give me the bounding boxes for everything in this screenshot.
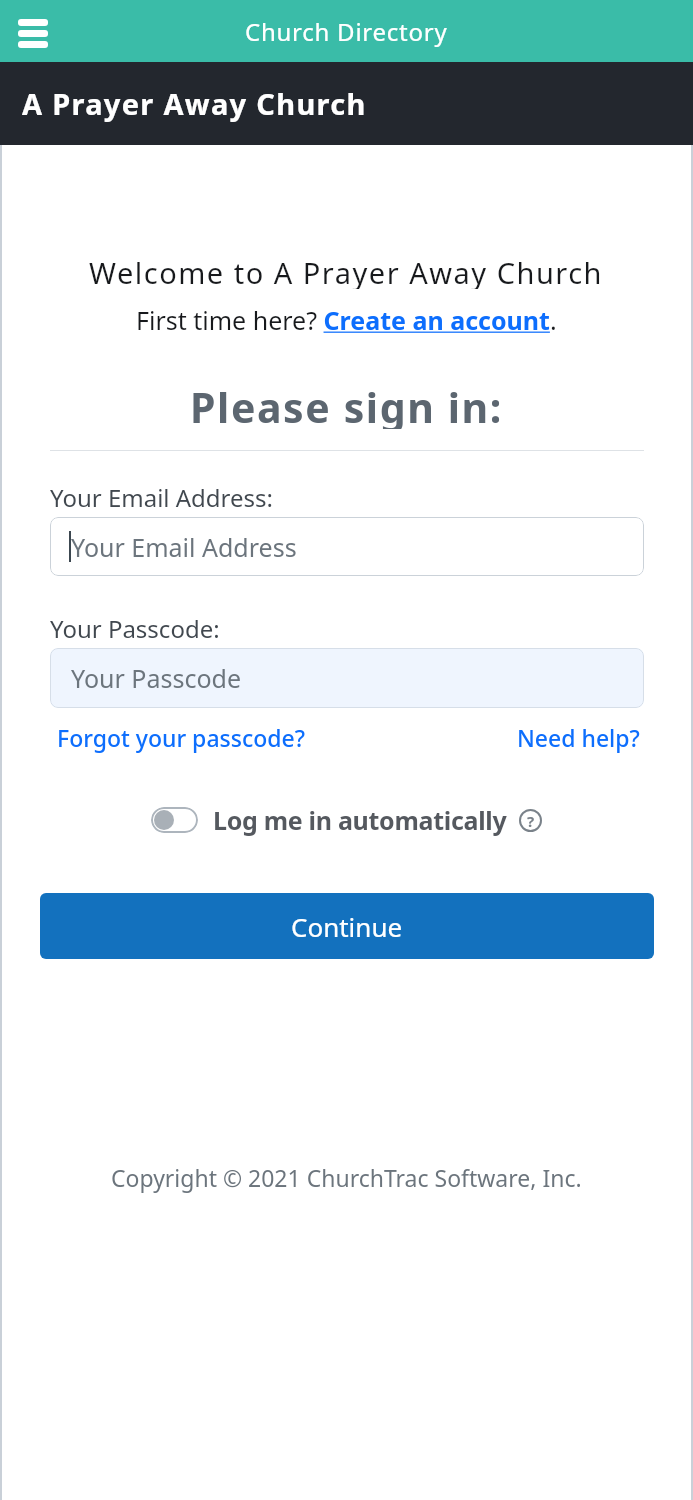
button[interactable]: First time here? Create an account. xyxy=(136,303,557,335)
staticText: Welcome to A Prayer Away Church xyxy=(89,253,604,289)
staticText: A Prayer Away Church xyxy=(22,84,367,123)
button[interactable]: Forgot your passcode? xyxy=(57,722,305,753)
staticText: Log me in automatically xyxy=(213,803,507,837)
staticText: Church Directory xyxy=(245,15,448,48)
staticText: Copyright © 2021 ChurchTrac Software, In… xyxy=(111,1162,582,1193)
button[interactable]: Need help? xyxy=(517,722,640,753)
staticText: ? xyxy=(527,811,535,831)
button[interactable] xyxy=(151,807,198,833)
staticText: Your Passcode: xyxy=(50,612,220,645)
staticText: Please sign in: xyxy=(190,379,503,429)
staticText: Forgot your passcode? xyxy=(57,722,305,753)
button[interactable]: Your Email Address xyxy=(50,517,644,576)
staticText: Your Email Address xyxy=(71,530,297,564)
button[interactable]: Your Passcode xyxy=(50,648,644,708)
staticText: Your Passcode xyxy=(71,661,242,695)
staticText: Your Email Address: xyxy=(50,481,274,514)
button[interactable] xyxy=(18,19,48,49)
button[interactable]: ? xyxy=(519,809,542,832)
staticText: Continue xyxy=(291,909,403,944)
button[interactable]: Continue xyxy=(40,893,654,959)
